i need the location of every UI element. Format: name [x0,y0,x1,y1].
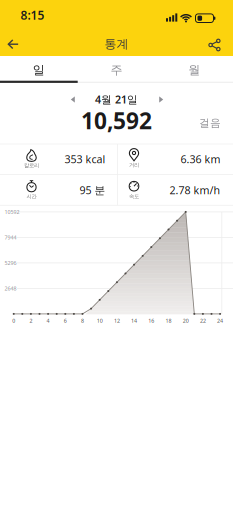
button[interactable]: Next day [154,92,168,106]
staticText: 2648 [5,285,17,292]
button[interactable]: Previous day [66,92,80,106]
staticText: 거리 [129,162,139,168]
staticText: 353 kcal [65,152,106,166]
staticText: 6.36 km [180,152,220,166]
staticText: 18 [165,317,171,324]
staticText: 0 [12,317,15,324]
staticText: 8 [81,317,84,324]
staticText: 14 [131,317,137,324]
staticText: 8:15 [20,7,44,23]
staticText: 속도 [129,193,139,200]
staticText: 95 분 [80,183,106,197]
staticText: 16 [148,317,154,324]
staticText: 5296 [5,259,17,266]
staticText: 월 [188,63,200,77]
button[interactable]: 월 [155,57,233,83]
staticText: 10,592 [81,105,152,135]
button[interactable]: 일 [0,57,78,83]
staticText: 칼로리 [24,162,39,169]
staticText: 일 [33,63,45,77]
button[interactable]: Share [204,35,224,55]
staticText: 6 [64,317,67,324]
staticText: 22 [200,317,206,324]
staticText: 주 [110,63,122,77]
staticText: 2 [29,317,32,324]
staticText: 10592 [5,208,20,215]
staticText: 4 [47,317,50,324]
staticText: 20 [183,317,189,324]
staticText: 10 [97,317,103,324]
staticText: 24 [217,317,223,324]
button[interactable]: Back [1,34,25,54]
staticText: 2.78 km/h [169,183,220,197]
staticText: 걸음 [199,116,221,129]
staticText: 통계 [104,37,128,51]
staticText: 시간 [26,193,36,200]
staticText: 7944 [5,234,17,241]
button[interactable]: 주 [78,57,155,83]
staticText: 12 [114,317,120,324]
staticText: 4월 21일 [95,92,138,106]
